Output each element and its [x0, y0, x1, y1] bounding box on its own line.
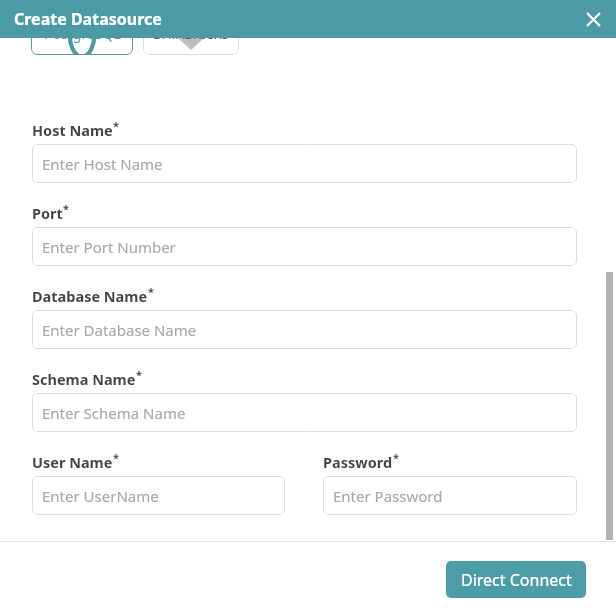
button[interactable]: Enter Port Number: [32, 227, 577, 266]
staticText: Enter Schema Name: [42, 403, 186, 423]
staticText: *: [148, 284, 154, 299]
staticText: DATABRICKS: [153, 25, 229, 43]
staticText: Create Datasource: [14, 8, 162, 30]
staticText: Schema Name: [32, 369, 136, 389]
staticText: Enter Password: [333, 486, 443, 506]
button[interactable]: Close: [578, 4, 608, 34]
button[interactable]: Enter UserName: [32, 476, 285, 515]
staticText: Database Name: [32, 286, 148, 306]
button[interactable]: Direct Connect: [446, 561, 586, 598]
button[interactable]: Enter Schema Name: [32, 393, 577, 432]
staticText: Enter Database Name: [42, 320, 197, 340]
staticText: *: [63, 201, 69, 216]
staticText: Enter Host Name: [42, 154, 163, 174]
staticText: User Name: [32, 452, 113, 472]
button[interactable]: Enter Password: [323, 476, 577, 515]
button[interactable]: PostgreSQL: [31, 6, 133, 55]
staticText: Enter Port Number: [42, 237, 176, 257]
button[interactable]: Enter Database Name: [32, 310, 577, 349]
staticText: Password: [323, 452, 393, 472]
button[interactable]: Enter Host Name: [32, 144, 577, 183]
button[interactable]: DATABRICKS: [143, 6, 239, 55]
staticText: PostgreSQL: [44, 24, 121, 43]
staticText: Port: [32, 203, 63, 223]
staticText: *: [113, 118, 119, 133]
staticText: *: [393, 450, 399, 465]
staticText: Enter UserName: [42, 486, 159, 506]
staticText: *: [113, 450, 119, 465]
staticText: Direct Connect: [461, 569, 572, 591]
staticText: Host Name: [32, 120, 113, 140]
staticText: *: [136, 367, 142, 382]
